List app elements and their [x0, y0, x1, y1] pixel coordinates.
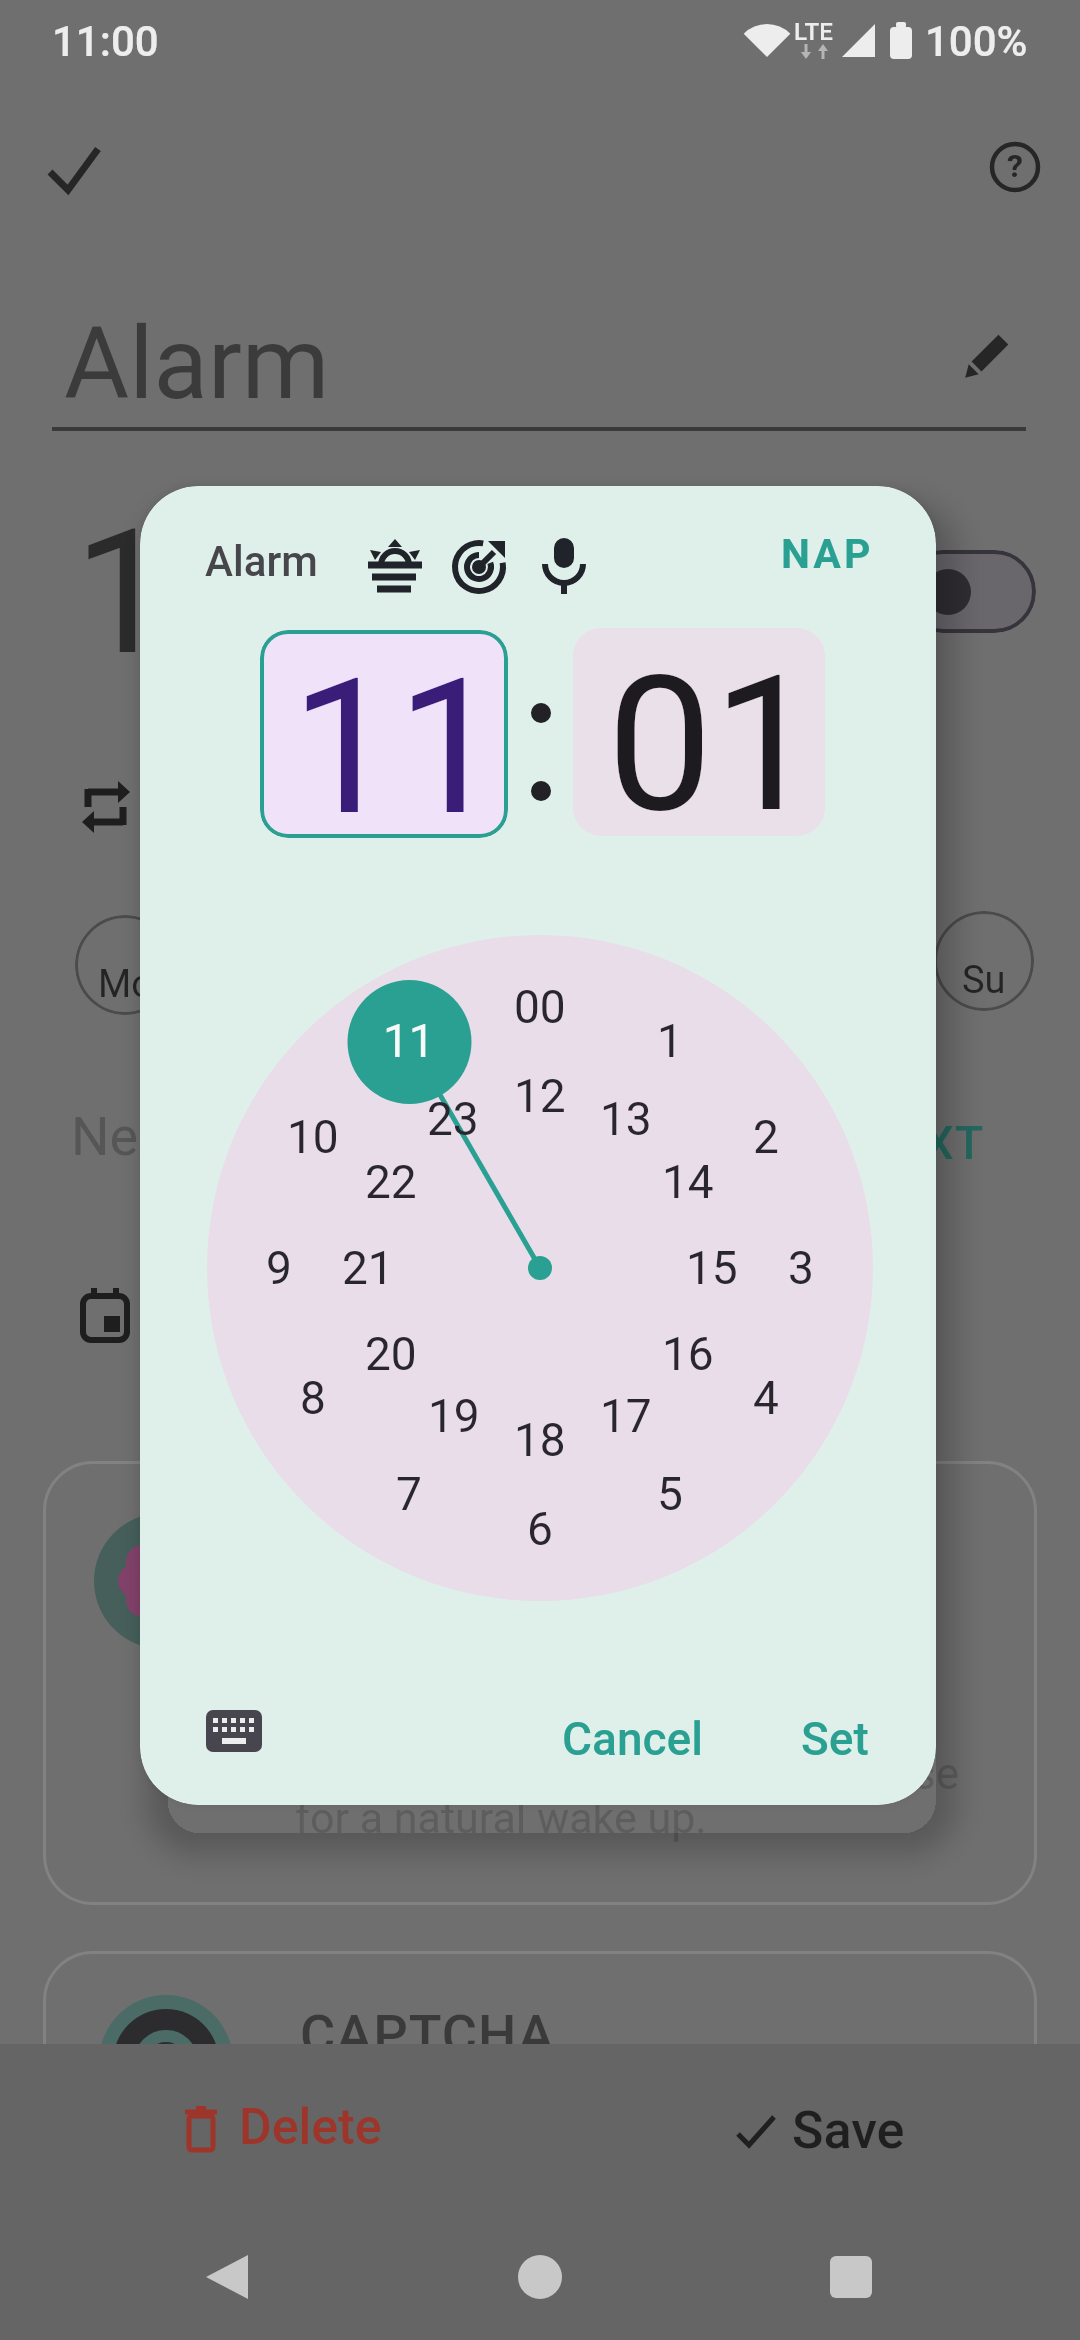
button[interactable]: Su [934, 911, 1034, 1011]
staticText: 10 [287, 1110, 339, 1164]
button[interactable] [150, 2080, 440, 2176]
staticText: 16 [662, 1327, 714, 1381]
staticText: 6 [527, 1502, 553, 1556]
staticText: 19 [428, 1389, 480, 1443]
staticText: for a natural wake up. [295, 1793, 707, 1843]
staticText: Alarm [205, 537, 318, 586]
staticText: 23 [427, 1092, 479, 1146]
button[interactable] [700, 2080, 960, 2176]
staticText: Cancel [562, 1712, 704, 1766]
staticText: 7 [396, 1467, 422, 1521]
staticText: ? [1007, 147, 1023, 185]
button[interactable] [495, 2240, 585, 2314]
staticText: 17 [600, 1389, 652, 1443]
staticText: Save [792, 2100, 905, 2161]
button[interactable]: Cancel [540, 1699, 725, 1779]
button[interactable]: Set [770, 1699, 900, 1779]
staticText: Delete [239, 2098, 382, 2157]
staticText: 11 [383, 1014, 435, 1068]
button[interactable] [38, 136, 110, 208]
staticText: 15 [686, 1241, 738, 1295]
button[interactable] [43, 1951, 1037, 2331]
staticText: 1 [657, 1014, 683, 1068]
staticText: LTE [794, 18, 833, 46]
staticText: Su [962, 958, 1006, 1003]
button[interactable] [952, 326, 1016, 390]
staticText: 01 [607, 635, 819, 836]
staticText: 9 [266, 1241, 292, 1295]
staticText: 20 [365, 1327, 417, 1381]
staticText: 21 [342, 1241, 394, 1295]
button[interactable] [806, 2240, 896, 2314]
staticText: 14 [662, 1155, 714, 1209]
staticText: 4 [753, 1371, 779, 1425]
staticText: 1 [74, 492, 171, 692]
staticText: XT [924, 1115, 985, 1170]
staticText: 00 [514, 980, 566, 1034]
staticText: NAP [781, 530, 874, 578]
staticText: 22 [365, 1155, 417, 1209]
button[interactable]: Mo [75, 915, 175, 1015]
staticText: Alarm [64, 305, 330, 422]
button[interactable]: ? [985, 137, 1045, 197]
staticText: se [913, 1748, 960, 1800]
button[interactable] [188, 1688, 280, 1774]
button[interactable] [43, 1461, 1037, 1905]
staticText: 8 [300, 1371, 326, 1425]
staticText: Mo [98, 962, 153, 1007]
staticText: 12 [514, 1069, 566, 1123]
staticText: Next alarm in [71, 1105, 390, 1168]
staticText: Set [801, 1712, 869, 1766]
staticText: 2 [753, 1110, 779, 1164]
staticText: 13 [600, 1092, 652, 1146]
staticText: 5 [657, 1467, 683, 1521]
button[interactable] [180, 2240, 270, 2314]
button[interactable]: 11 [260, 630, 508, 838]
staticText: CAPTCHA [300, 2003, 555, 2066]
staticText: 100% [925, 17, 1028, 66]
staticText: 11:00 [52, 17, 159, 66]
staticText: 11 [291, 638, 503, 838]
button[interactable]: NAP [752, 516, 902, 592]
staticText: 18 [514, 1413, 566, 1467]
staticText: 3 [788, 1241, 814, 1295]
button[interactable]: 01 [573, 628, 825, 836]
button[interactable] [901, 550, 1036, 633]
